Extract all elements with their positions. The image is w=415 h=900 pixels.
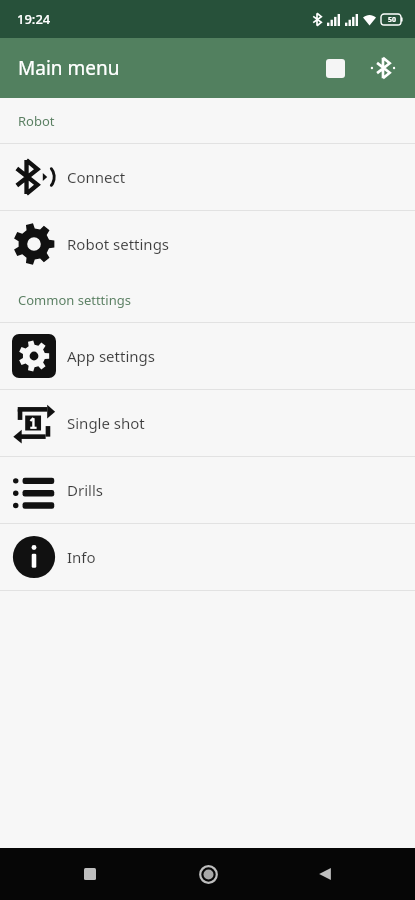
button[interactable]: Drills	[0, 457, 415, 523]
button[interactable]: Home	[181, 848, 235, 900]
staticText: Robot settings	[67, 234, 170, 254]
staticText: Robot	[18, 112, 55, 130]
button[interactable]: App settings	[0, 323, 415, 389]
button[interactable]: Back	[298, 848, 352, 900]
staticText: 19:24	[17, 10, 51, 28]
staticText: Single shot	[67, 413, 145, 433]
button[interactable]: Single shot	[0, 390, 415, 456]
button[interactable]: Info	[0, 524, 415, 590]
button[interactable]: Recents	[63, 848, 117, 900]
staticText: Common setttings	[18, 291, 131, 309]
staticText: Main menu	[18, 55, 120, 81]
staticText: App settings	[67, 346, 155, 366]
button[interactable]: Stop	[311, 44, 359, 92]
staticText: Drills	[67, 480, 103, 500]
button[interactable]: Connect	[0, 144, 415, 210]
staticText: Info	[67, 547, 96, 567]
staticText: 50	[388, 15, 397, 25]
button[interactable]: Bluetooth	[359, 44, 407, 92]
staticText: Connect	[67, 167, 126, 187]
button[interactable]: Robot settings	[0, 211, 415, 277]
